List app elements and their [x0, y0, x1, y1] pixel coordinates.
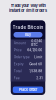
staticText: instant or limit orders [9, 8, 47, 13]
staticText: 1,538.88 [29, 69, 42, 73]
staticText: Expiry [14, 62, 24, 66]
staticText: Total [14, 69, 22, 73]
button[interactable]: Place order [13, 86, 43, 93]
staticText: Place order [19, 87, 37, 92]
staticText: Buy [25, 32, 31, 37]
staticText: Limit [34, 55, 42, 59]
staticText: 2.31 [36, 76, 42, 80]
staticText: 64,120.00 [27, 48, 42, 52]
staticText: Order type [14, 55, 30, 59]
staticText: Price [14, 48, 22, 52]
staticText: Amount [14, 41, 26, 45]
staticText: Trade your way with [10, 3, 45, 8]
staticText: Good till [29, 62, 42, 66]
staticText: Fee [14, 76, 20, 80]
staticText: Trade Bitcoin [12, 24, 43, 30]
staticText: 0.0240 BTC [31, 39, 42, 47]
